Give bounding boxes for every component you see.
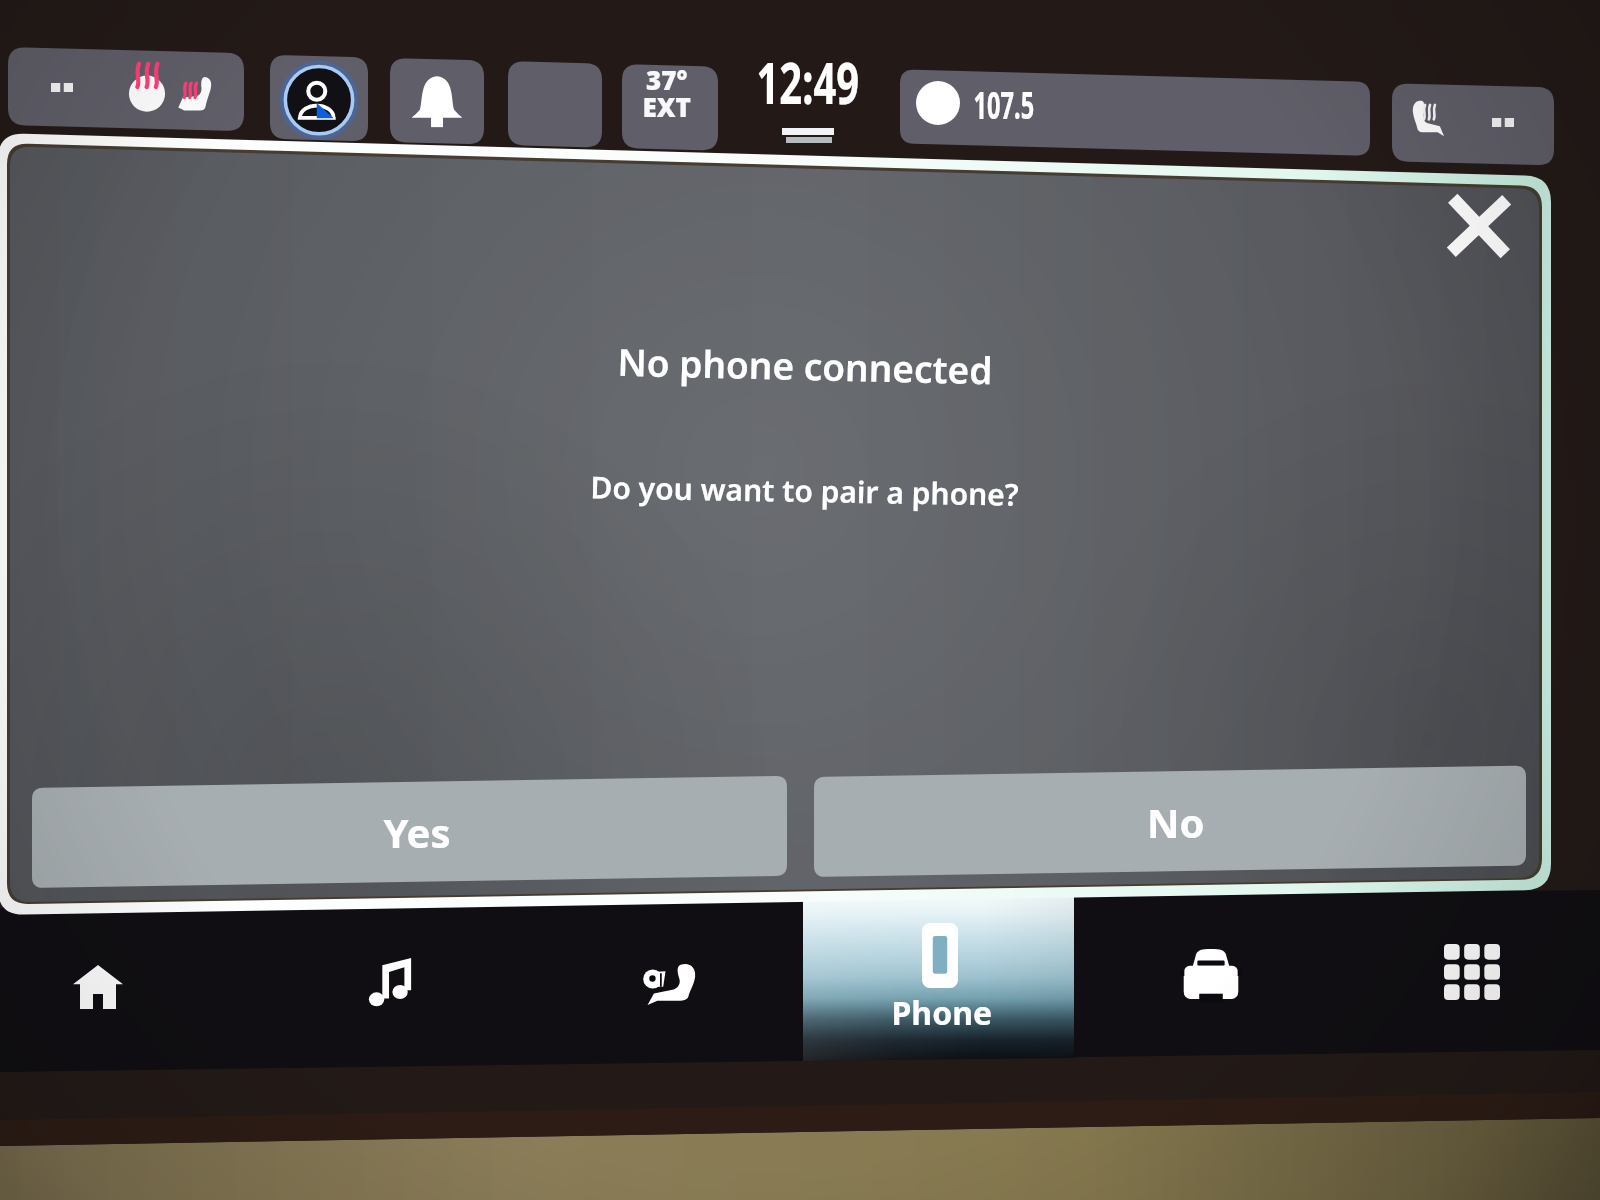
button[interactable]: Notifications [390, 58, 484, 142]
button[interactable]: Yes [31, 784, 788, 885]
button[interactable]: Profile [270, 55, 368, 139]
button[interactable]: Radio 107.5 [903, 76, 1369, 148]
button[interactable]: Apps shortcut [508, 61, 602, 145]
button[interactable]: Phone [803, 899, 1075, 1060]
button[interactable]: Close [1443, 197, 1515, 269]
button[interactable]: Vehicle [1075, 903, 1337, 1060]
button[interactable]: Home [0, 903, 268, 1060]
button[interactable]: Climate [536, 903, 803, 1060]
button[interactable]: Apps [1337, 903, 1600, 1060]
button[interactable]: Exterior temperature 37 degrees [622, 65, 718, 149]
button[interactable]: Climate [8, 47, 244, 127]
button[interactable]: Passenger seat climate [1393, 91, 1600, 171]
button[interactable]: Clock 12:49 [752, 60, 874, 144]
button[interactable]: Media [268, 903, 536, 1060]
button[interactable]: No [814, 773, 1526, 874]
